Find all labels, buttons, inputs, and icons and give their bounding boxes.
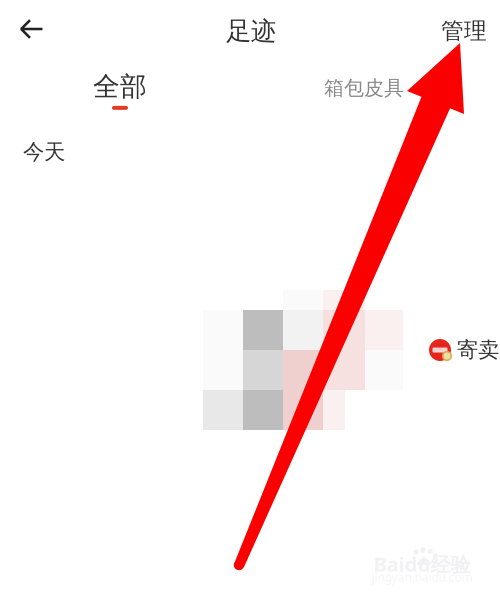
staticText: 足迹 <box>226 15 276 46</box>
button[interactable]: 箱包皮具 <box>309 66 419 110</box>
staticText: 寄卖 <box>457 337 499 363</box>
button[interactable]: 管理 <box>435 11 493 51</box>
staticText: 箱包皮具 <box>324 76 404 100</box>
staticText: jingyan.baidu.com <box>371 569 472 585</box>
button[interactable]: 全部 <box>75 66 165 114</box>
staticText: 今天 <box>23 139 65 165</box>
staticText: 全部 <box>93 70 147 103</box>
staticText: Baidu经验 <box>373 551 470 577</box>
button[interactable]: 寄卖 <box>427 335 500 365</box>
staticText: 管理 <box>441 17 487 45</box>
button[interactable]: Back <box>8 7 54 51</box>
